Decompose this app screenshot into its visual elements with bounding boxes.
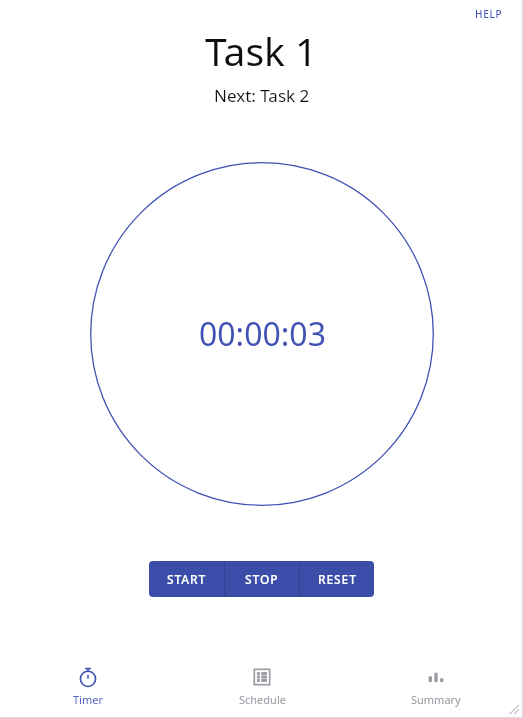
- button[interactable]: STOP: [225, 561, 299, 597]
- staticText: START: [167, 571, 207, 587]
- staticText: Schedule: [239, 692, 286, 707]
- staticText: RESET: [318, 571, 357, 587]
- staticText: Summary: [411, 692, 461, 707]
- button[interactable]: Summary: [349, 654, 523, 718]
- staticText: 00:00:03: [199, 312, 326, 356]
- button[interactable]: RESET: [300, 561, 374, 597]
- staticText: HELP: [475, 7, 503, 21]
- staticText: Timer: [73, 692, 103, 707]
- button[interactable]: HELP: [475, 7, 503, 21]
- button[interactable]: Schedule: [175, 654, 349, 718]
- staticText: STOP: [245, 571, 279, 587]
- staticText: Next: Task 2: [214, 84, 310, 107]
- button[interactable]: START: [149, 561, 224, 597]
- button[interactable]: Timer: [0, 654, 175, 718]
- staticText: Task 1: [205, 24, 318, 77]
